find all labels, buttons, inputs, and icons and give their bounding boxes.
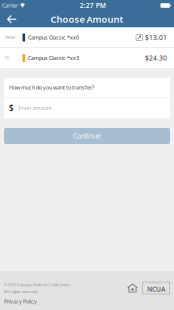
- button[interactable]: Privacy Policy: [4, 298, 37, 305]
- button[interactable]: TO: [0, 48, 174, 68]
- staticText: NCUA: [147, 285, 165, 294]
- staticText: © 2016 Campus Federal Credit Union.: [4, 282, 70, 287]
- staticText: How much do you want to transfer?: [9, 84, 94, 91]
- button[interactable]: FROM: [0, 27, 174, 47]
- staticText: All rights reserved.: [4, 289, 38, 294]
- staticText: Choose Amount: [50, 13, 123, 25]
- staticText: $24.30: [145, 54, 167, 62]
- staticText: Campus Classic *xx3: [28, 54, 79, 62]
- staticText: 2:27 PM: [80, 1, 106, 10]
- staticText: TO: [4, 55, 9, 61]
- button[interactable]: Continue: [0, 128, 174, 144]
- staticText: $: [9, 103, 14, 113]
- staticText: Continue: [73, 132, 101, 140]
- staticText: Carrier: [2, 2, 18, 9]
- staticText: FROM: [4, 35, 15, 40]
- staticText: Enter amount: [18, 104, 51, 112]
- staticText: Privacy Policy: [4, 298, 37, 305]
- staticText: $13.01: [145, 33, 167, 42]
- staticText: Campus Classic *xx0: [28, 34, 79, 41]
- button[interactable]: Back: [0, 11, 24, 27]
